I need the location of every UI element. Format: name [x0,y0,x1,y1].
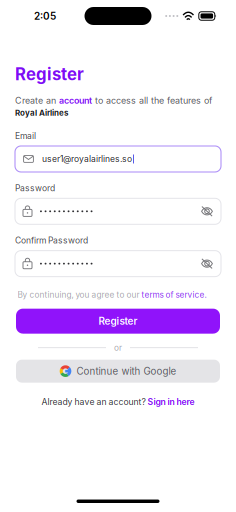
staticText: to access all the features of [92,95,212,106]
staticText: Email [15,131,36,141]
staticText: Royal Airlines [15,108,68,118]
staticText: By continuing, you agree to our [17,290,141,300]
staticText: or [114,343,122,353]
staticText: Already have an account? [41,397,147,407]
staticText: terms of service. [141,290,206,300]
staticText: Register [98,315,137,327]
staticText: Sign in here [147,397,194,407]
button[interactable]: Register [16,309,220,334]
staticText: Confirm Password [15,235,88,246]
button[interactable]: Sign in here [147,397,194,407]
staticText: 2:05 [34,10,56,22]
staticText: Password [15,183,55,193]
button[interactable]: Continue with Google [16,360,220,383]
staticText: account [59,95,92,106]
staticText: Register [15,64,84,84]
staticText: Continue with Google [76,365,176,377]
staticText: user1@royalairlines.so [42,154,132,164]
staticText: Create an [15,95,59,106]
